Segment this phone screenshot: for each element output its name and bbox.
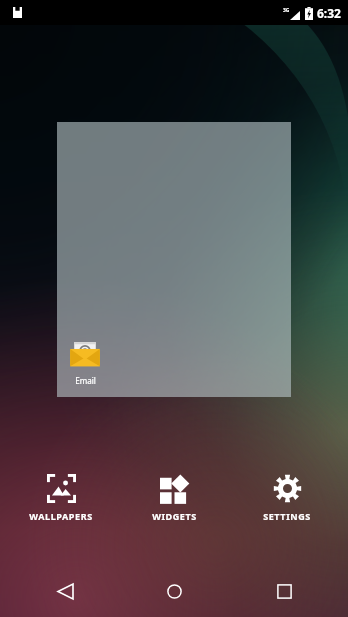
button[interactable]: Email [58,334,112,386]
staticText: SETTINGS [263,510,311,522]
button[interactable]: WALLPAPERS [9,467,113,522]
button[interactable]: SETTINGS [235,467,339,522]
staticText: 3G [283,7,290,14]
button[interactable]: Back [20,565,110,617]
staticText: Email [75,375,96,386]
button[interactable]: Home [129,565,219,617]
staticText: WALLPAPERS [29,510,93,522]
staticText: 6:32 [317,5,341,21]
button[interactable]: WIDGETS [122,467,226,522]
staticText: WIDGETS [152,510,197,522]
button[interactable]: Recent apps [239,565,329,617]
